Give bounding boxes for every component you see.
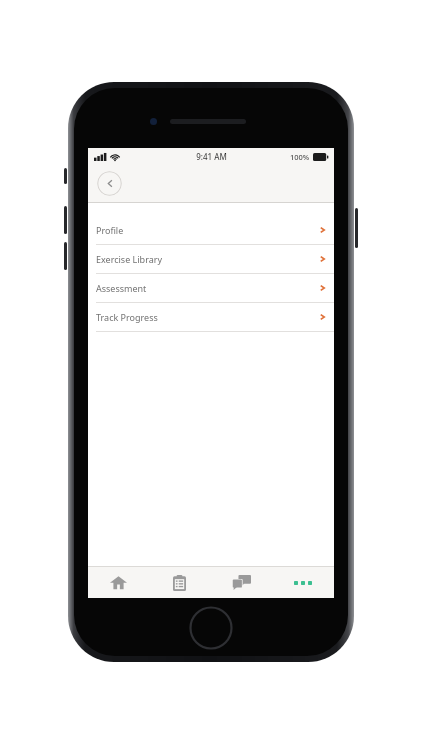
staticText: Exercise Library bbox=[96, 253, 163, 265]
staticText: 100% bbox=[290, 152, 310, 162]
staticText: Assessment bbox=[96, 282, 147, 294]
button[interactable]: Messages bbox=[210, 567, 272, 598]
staticText: Track Progress bbox=[96, 311, 158, 323]
staticText: 9:41 AM bbox=[196, 151, 227, 162]
button[interactable]: Assessment bbox=[88, 274, 334, 303]
button[interactable]: Home bbox=[88, 567, 149, 598]
button[interactable]: Profile bbox=[88, 216, 334, 245]
button[interactable]: Back bbox=[97, 171, 122, 196]
button[interactable]: Exercises bbox=[149, 567, 210, 598]
button[interactable]: Track Progress bbox=[88, 303, 334, 332]
button[interactable]: More bbox=[272, 567, 334, 598]
staticText: Profile bbox=[96, 224, 124, 236]
button[interactable]: Exercise Library bbox=[88, 245, 334, 274]
